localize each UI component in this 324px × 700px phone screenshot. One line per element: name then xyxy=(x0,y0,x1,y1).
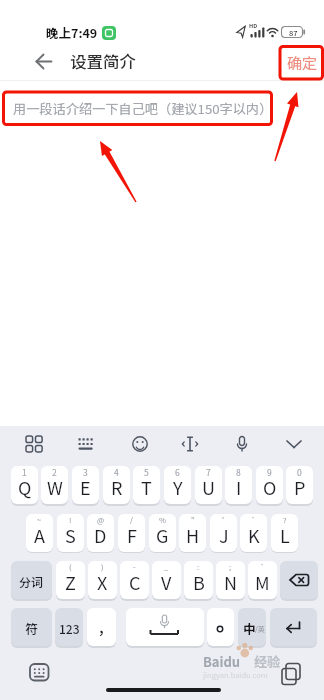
staticText: ) xyxy=(101,561,104,572)
button[interactable] xyxy=(278,661,306,689)
staticText: H xyxy=(186,522,200,548)
staticText: ` xyxy=(260,561,265,572)
button[interactable]: ' xyxy=(210,514,237,552)
button[interactable]: 8 xyxy=(225,466,252,504)
staticText: 3 xyxy=(83,466,88,478)
button[interactable]: ~ xyxy=(26,514,53,552)
button[interactable]: 3 xyxy=(72,466,99,504)
button[interactable] xyxy=(126,608,204,646)
staticText: F xyxy=(127,522,137,548)
staticText: ' xyxy=(222,514,225,525)
staticText: 123 xyxy=(59,620,80,637)
staticText: HD xyxy=(249,22,258,29)
button[interactable]: _ xyxy=(152,561,181,599)
staticText: : xyxy=(197,561,200,572)
staticText: 6 xyxy=(175,466,180,478)
staticText: ( xyxy=(69,561,72,572)
button[interactable]: ! xyxy=(57,514,84,552)
button[interactable] xyxy=(229,431,255,457)
staticText: 7 xyxy=(206,466,211,478)
button[interactable] xyxy=(21,431,47,457)
button[interactable]: ` xyxy=(248,561,277,599)
button[interactable]: - xyxy=(120,561,149,599)
staticText: U xyxy=(202,474,215,500)
staticText: 0 xyxy=(297,466,302,478)
staticText: - xyxy=(133,561,136,572)
button[interactable]: 0 xyxy=(286,466,313,504)
staticText: , xyxy=(99,614,104,637)
button[interactable]: 7 xyxy=(195,466,222,504)
button[interactable]: 123 xyxy=(55,608,83,646)
staticText: 用一段话介绍一下自己吧（建议150字以内） xyxy=(13,99,273,118)
button[interactable] xyxy=(280,561,318,599)
staticText: ; xyxy=(229,561,232,572)
button[interactable]: / xyxy=(118,514,145,552)
button[interactable] xyxy=(26,660,52,684)
button[interactable]: , xyxy=(87,608,116,646)
staticText: X xyxy=(97,569,108,595)
button[interactable]: ; xyxy=(216,561,245,599)
staticText: Baidu xyxy=(203,652,241,668)
button[interactable]: ` xyxy=(240,514,267,552)
staticText: M xyxy=(255,569,270,595)
button[interactable]: 符 xyxy=(11,608,52,646)
staticText: 4 xyxy=(114,466,119,478)
button[interactable] xyxy=(177,431,203,457)
staticText: 符 xyxy=(25,619,39,638)
button[interactable]: 中 xyxy=(238,608,266,646)
staticText: R xyxy=(111,474,123,500)
button[interactable]: 分词 xyxy=(11,561,52,599)
button[interactable]: 6 xyxy=(164,466,191,504)
staticText: 87 xyxy=(289,27,298,38)
button[interactable]: 确定 xyxy=(285,52,319,71)
button[interactable]: " xyxy=(179,514,206,552)
button[interactable] xyxy=(75,431,101,457)
button[interactable]: 9 xyxy=(256,466,283,504)
button[interactable]: ? xyxy=(271,514,298,552)
staticText: / xyxy=(130,514,133,525)
staticText: K xyxy=(248,522,260,548)
staticText: J xyxy=(219,522,229,548)
staticText: S xyxy=(65,522,76,548)
staticText: G xyxy=(156,522,169,548)
staticText: 中 xyxy=(243,619,256,637)
button[interactable] xyxy=(30,50,56,74)
button[interactable] xyxy=(270,608,317,646)
staticText: L xyxy=(280,522,290,548)
staticText: B xyxy=(193,569,205,595)
staticText: V xyxy=(161,569,172,595)
button[interactable]: 5 xyxy=(133,466,160,504)
staticText: W xyxy=(47,474,63,500)
button[interactable] xyxy=(127,431,153,457)
button[interactable] xyxy=(281,431,307,457)
staticText: P xyxy=(294,474,306,500)
button[interactable]: 2 xyxy=(41,466,68,504)
staticText: 1 xyxy=(22,466,27,478)
button[interactable]: % xyxy=(149,514,176,552)
button[interactable]: 4 xyxy=(103,466,130,504)
staticText: 分词 xyxy=(19,573,44,590)
staticText: 8 xyxy=(236,466,241,478)
staticText: 晚上7:49 xyxy=(46,23,98,37)
staticText: ` xyxy=(251,514,256,525)
button[interactable]: ( xyxy=(56,561,85,599)
staticText: /英 xyxy=(255,624,265,634)
staticText: D xyxy=(94,522,107,548)
button[interactable]: 1 xyxy=(11,466,38,504)
staticText: " xyxy=(191,514,195,525)
staticText: 经验 xyxy=(254,652,281,668)
staticText: E xyxy=(80,474,91,500)
button[interactable]: ) xyxy=(88,561,117,599)
button[interactable]: @ xyxy=(87,514,114,552)
staticText: I xyxy=(236,474,242,500)
button[interactable]: 用一段话介绍一下自己吧（建议150字以内） xyxy=(13,97,273,119)
staticText: ? xyxy=(283,514,287,525)
staticText: 设置简介 xyxy=(70,49,136,70)
button[interactable] xyxy=(207,608,234,646)
staticText: A xyxy=(34,522,45,548)
staticText: @ xyxy=(97,514,105,525)
staticText: jingyan.baidu.com xyxy=(203,669,268,679)
staticText: Z xyxy=(65,569,76,595)
button[interactable]: : xyxy=(184,561,213,599)
staticText: ~ xyxy=(37,514,42,525)
